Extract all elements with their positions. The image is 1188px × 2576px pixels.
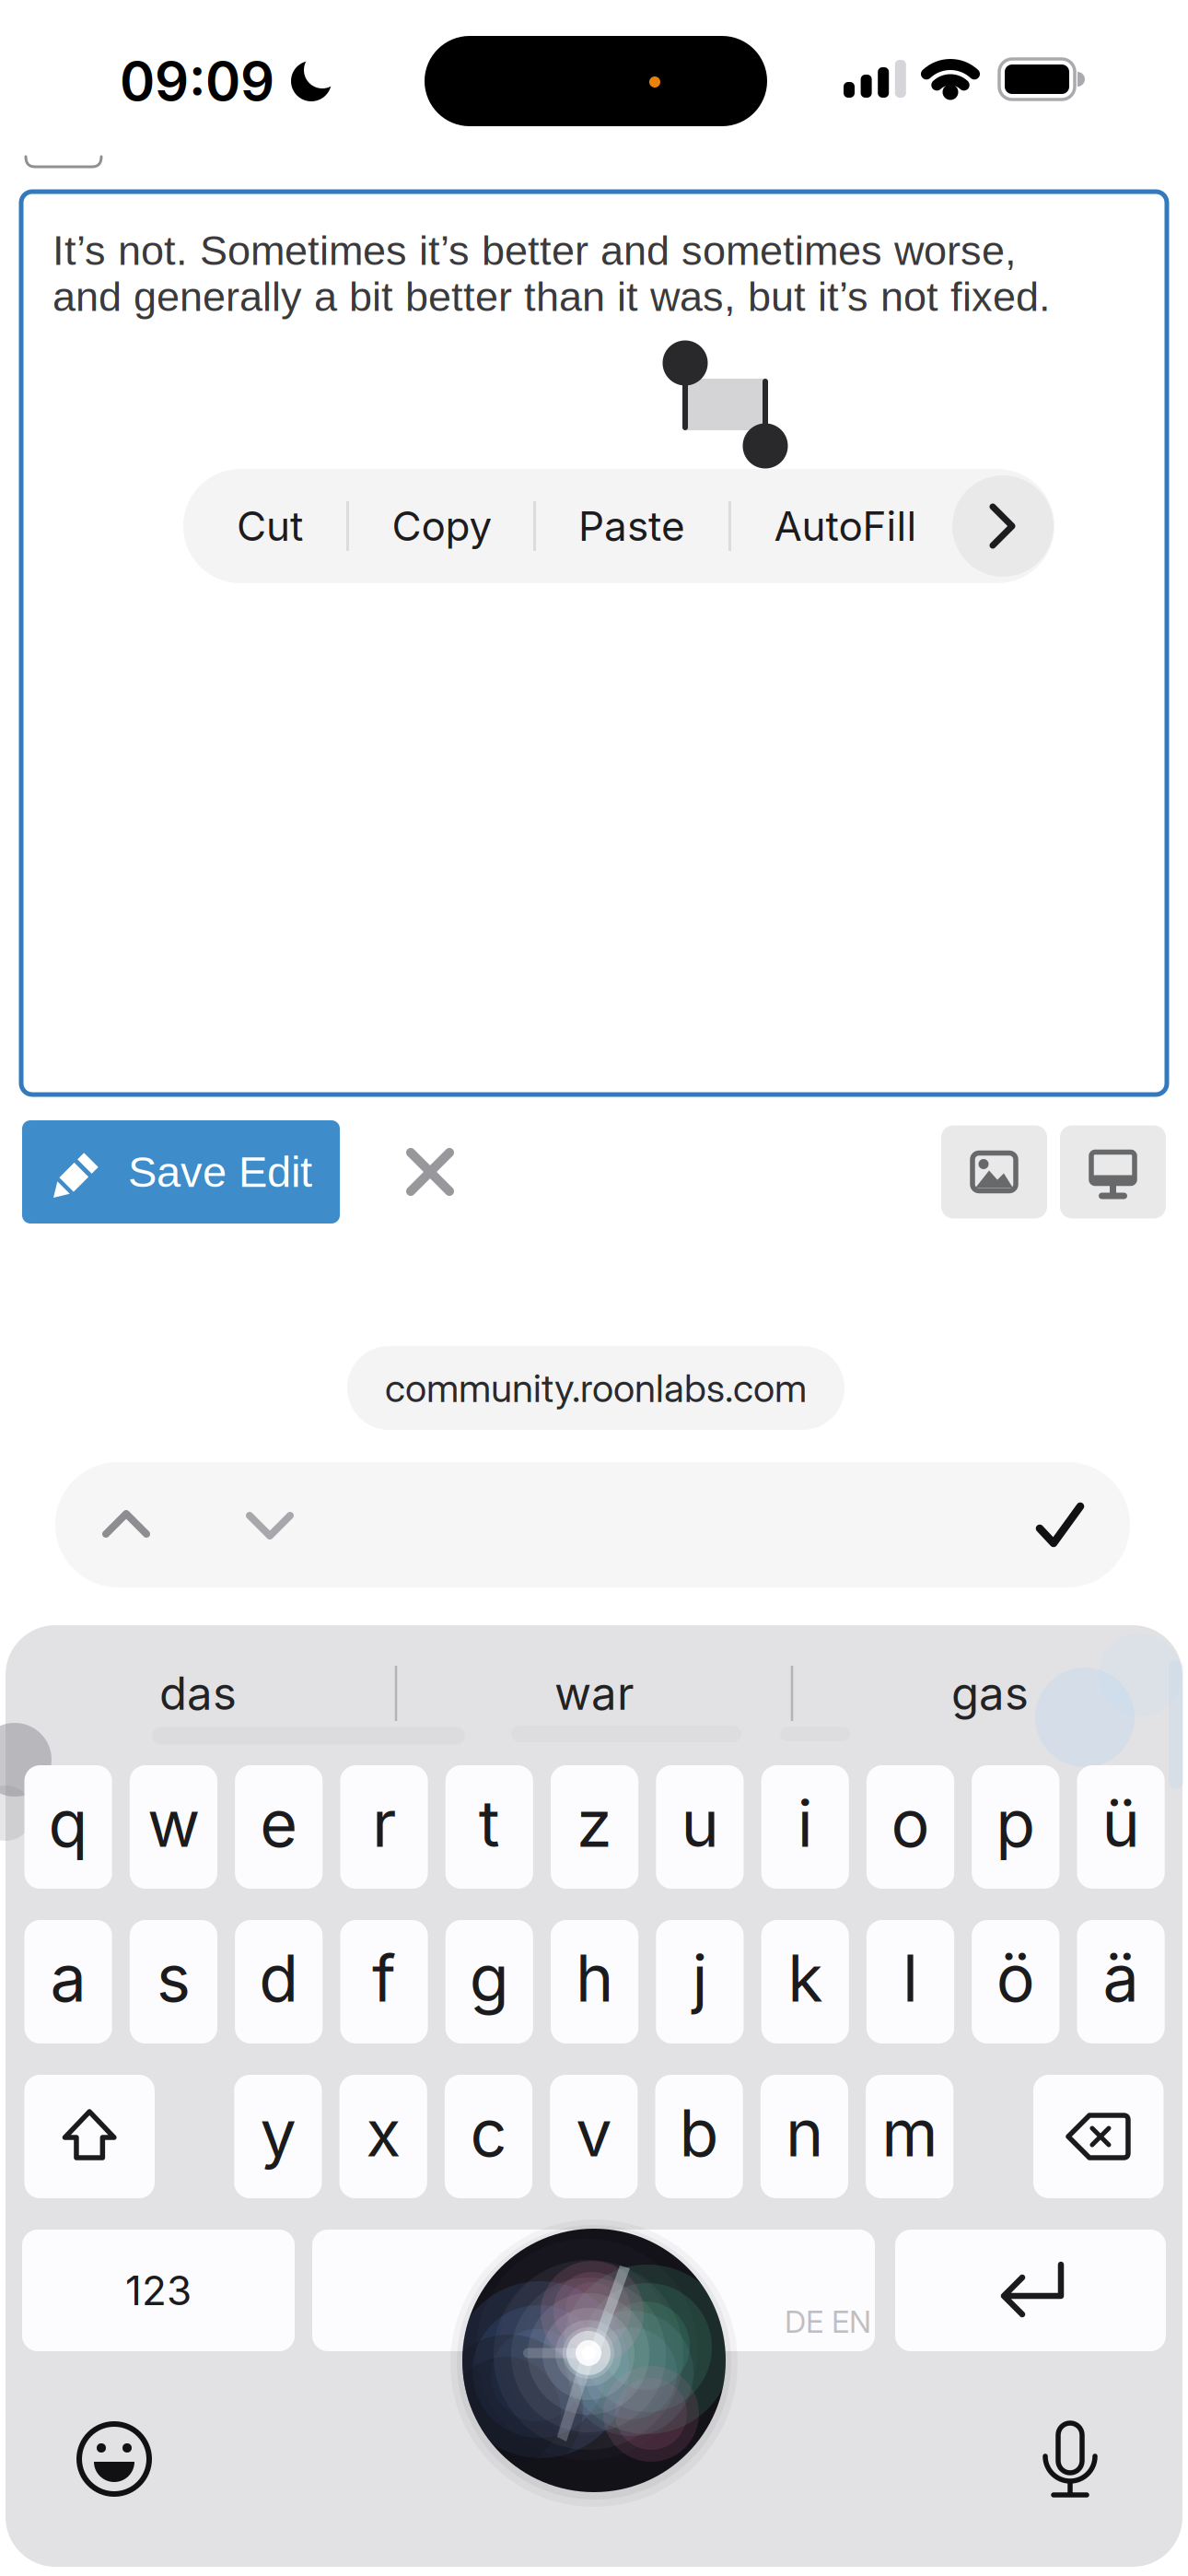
staticText: ä [1103, 1939, 1139, 2017]
button[interactable]: v [550, 2075, 638, 2198]
button[interactable]: y [234, 2075, 322, 2198]
button[interactable]: l [867, 1920, 954, 2043]
button[interactable]: Return [895, 2230, 1166, 2351]
button[interactable]: a [24, 1920, 112, 2043]
button[interactable]: Done [1032, 1501, 1088, 1549]
button[interactable]: q [24, 1765, 112, 1889]
staticText: i [797, 1784, 813, 1862]
button[interactable]: g [445, 1920, 533, 2043]
button[interactable]: Delete [1033, 2075, 1164, 2198]
button[interactable]: das [14, 1649, 382, 1738]
staticText: community.roonlabs.com [385, 1365, 807, 1411]
button[interactable]: Space [312, 2230, 875, 2351]
staticText: c [470, 2094, 507, 2172]
staticText: a [50, 1939, 86, 2017]
staticText: Cut [237, 502, 303, 551]
staticText: z [577, 1784, 613, 1862]
button[interactable]: h [551, 1920, 638, 2043]
staticText: b [679, 2094, 719, 2172]
button[interactable]: Cut [192, 469, 348, 583]
button[interactable]: k [761, 1920, 849, 2043]
button[interactable]: t [445, 1765, 533, 1889]
button[interactable]: Cancel [399, 1141, 461, 1203]
button[interactable]: Paste [553, 469, 710, 583]
button[interactable]: Toggle preview [1060, 1125, 1166, 1218]
staticText: j [692, 1939, 708, 2017]
staticText: DE EN [785, 2303, 871, 2340]
button[interactable]: m [866, 2075, 953, 2198]
button[interactable]: z [551, 1765, 638, 1889]
button[interactable]: u [656, 1765, 744, 1889]
staticText: 09:09 [120, 49, 274, 113]
staticText: l [903, 1939, 918, 2017]
button[interactable]: d [235, 1920, 323, 2043]
button[interactable]: n [761, 2075, 848, 2198]
staticText: das [159, 1666, 237, 1721]
staticText: t [479, 1784, 500, 1862]
staticText: Save Edit [128, 1148, 312, 1196]
staticText: ü [1102, 1784, 1140, 1862]
staticText: s [156, 1939, 191, 2017]
staticText: e [260, 1784, 298, 1862]
staticText: x [366, 2094, 401, 2172]
button[interactable]: j [656, 1920, 744, 2043]
button[interactable]: w [130, 1765, 217, 1889]
staticText: q [48, 1784, 88, 1862]
button[interactable]: Shift [24, 2075, 155, 2198]
button[interactable]: r [340, 1765, 428, 1889]
staticText: g [469, 1939, 509, 2017]
staticText: v [576, 2094, 612, 2172]
staticText: gas [951, 1666, 1029, 1721]
staticText: Copy [392, 502, 492, 551]
staticText: m [882, 2094, 938, 2172]
staticText: u [681, 1784, 719, 1862]
staticText: ö [996, 1939, 1035, 2017]
button[interactable]: war [410, 1649, 778, 1738]
staticText: f [372, 1939, 396, 2017]
button[interactable]: ü [1077, 1765, 1165, 1889]
staticText: o [891, 1784, 930, 1862]
staticText: k [788, 1939, 823, 2017]
button[interactable]: Previous field [97, 1505, 156, 1545]
staticText: It’s not. Sometimes it’s better and some… [52, 227, 1017, 274]
staticText: 123 [125, 2266, 192, 2315]
button[interactable]: ö [972, 1920, 1059, 2043]
button[interactable]: s [130, 1920, 217, 2043]
button[interactable]: Dictate [1029, 2417, 1112, 2500]
button[interactable]: Copy [364, 469, 520, 583]
staticText: r [372, 1784, 396, 1862]
button[interactable]: ä [1077, 1920, 1165, 2043]
staticText: AutoFill [774, 502, 917, 551]
button[interactable]: Upload image [941, 1125, 1047, 1218]
button[interactable]: AutoFill [767, 469, 924, 583]
button[interactable]: e [235, 1765, 323, 1889]
staticText: n [785, 2094, 823, 2172]
button[interactable]: gas [806, 1649, 1174, 1738]
button[interactable]: More [952, 475, 1054, 577]
button[interactable]: 123 [22, 2230, 295, 2351]
button[interactable]: Emoji [73, 2418, 156, 2500]
button[interactable]: Next field [240, 1505, 299, 1545]
staticText: and generally a bit better than it was, … [52, 274, 1051, 320]
button[interactable]: Save Edit [22, 1120, 340, 1224]
staticText: w [147, 1784, 200, 1862]
button[interactable]: b [655, 2075, 743, 2198]
staticText: war [554, 1666, 634, 1721]
staticText: h [576, 1939, 613, 2017]
staticText: p [996, 1784, 1035, 1862]
button[interactable]: x [339, 2075, 427, 2198]
button[interactable]: o [867, 1765, 954, 1889]
staticText: Paste [578, 502, 685, 551]
button[interactable]: p [972, 1765, 1059, 1889]
button[interactable]: f [340, 1920, 428, 2043]
staticText: y [260, 2094, 296, 2172]
button[interactable]: i [761, 1765, 849, 1889]
button[interactable]: c [445, 2075, 532, 2198]
staticText: d [259, 1939, 299, 2017]
